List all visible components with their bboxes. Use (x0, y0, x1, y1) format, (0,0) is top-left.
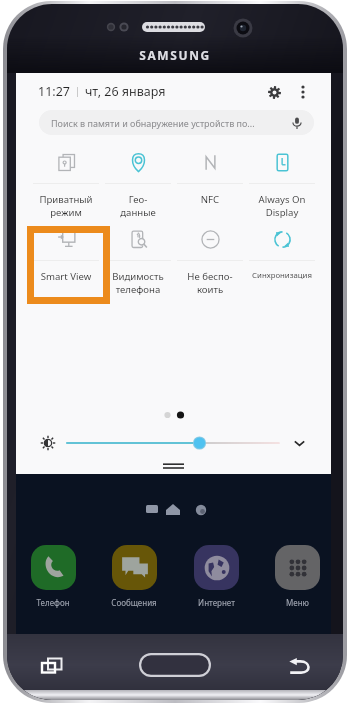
button[interactable]: Settings (263, 81, 285, 103)
button[interactable]: Синхронизация (246, 225, 318, 302)
staticText: Интернет (198, 597, 235, 608)
button[interactable]: Гео- данные (102, 148, 174, 225)
staticText: Меню (286, 597, 309, 608)
button[interactable]: Не беспо- коить (174, 225, 246, 302)
staticText: Не беспо- коить (174, 270, 246, 296)
staticText: Видимость телефона (102, 270, 174, 296)
staticText: SAMSUNG (0, 47, 350, 63)
button[interactable]: Поиск в памяти и обнаружение устройств п… (39, 110, 314, 135)
staticText: Синхронизация (246, 270, 318, 281)
staticText: Гео- данные (102, 193, 174, 219)
button[interactable]: Меню (268, 545, 326, 608)
staticText: чт, 26 января (85, 83, 166, 100)
button[interactable]: Always On Display (246, 148, 318, 225)
button[interactable]: More options (295, 84, 311, 100)
button[interactable]: NFC (174, 148, 246, 225)
staticText: Приватный режим (30, 193, 102, 219)
staticText: Always On Display (246, 193, 318, 219)
button[interactable]: Smart View (30, 225, 102, 302)
staticText: 11:27 (38, 83, 70, 100)
button[interactable]: Home (103, 645, 247, 685)
staticText: Smart View (30, 270, 102, 283)
button[interactable]: Сообщения (105, 545, 163, 608)
button[interactable]: Back (247, 645, 350, 685)
button[interactable]: Телефон (24, 545, 82, 608)
staticText: Сообщения (111, 597, 157, 608)
staticText: NFC (174, 193, 246, 206)
button[interactable]: Интернет (187, 545, 245, 608)
staticText: Поиск в памяти и обнаружение устройств п… (51, 117, 255, 129)
staticText: Телефон (36, 597, 70, 608)
button[interactable]: Expand panel (290, 434, 308, 452)
button[interactable]: Видимость телефона (102, 225, 174, 302)
button[interactable]: Приватный режим (30, 148, 102, 225)
button[interactable]: Recents (0, 645, 103, 685)
